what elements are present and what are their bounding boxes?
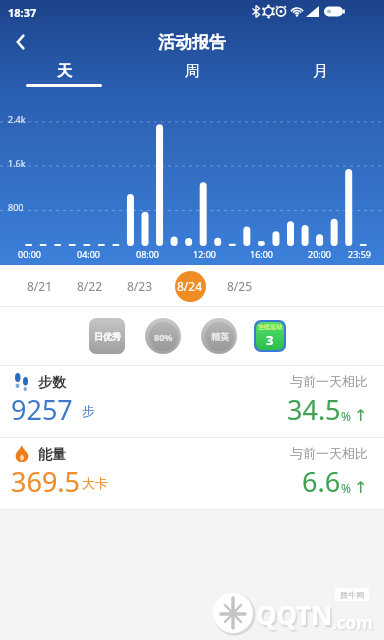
staticText: 8/25	[227, 278, 253, 294]
button[interactable]: 周	[128, 58, 256, 92]
staticText: 与前一天相比	[290, 445, 368, 461]
button[interactable]: 天	[0, 58, 128, 92]
staticText: 与前一天相比	[290, 373, 368, 389]
staticText: ↑	[354, 406, 368, 425]
staticText: 34.5	[287, 391, 341, 428]
staticText: 大卡	[82, 475, 108, 491]
staticText: 日优秀	[94, 331, 121, 342]
staticText: 腾牛网	[340, 590, 364, 600]
button[interactable]: 8/23	[120, 266, 160, 306]
staticText: 活动报告	[0, 32, 384, 53]
staticText: 9257	[11, 391, 73, 428]
staticText: 12:00	[193, 248, 217, 260]
staticText: 1.6k	[8, 157, 26, 169]
staticText: 6.6	[302, 463, 341, 500]
staticText: ↑	[354, 478, 368, 497]
staticText: 能量	[38, 446, 66, 464]
button[interactable]	[6, 27, 36, 57]
staticText: 8/23	[127, 278, 153, 294]
staticText: 8/21	[27, 278, 53, 294]
button[interactable]: 月	[256, 58, 384, 92]
button[interactable]: 8/21	[20, 266, 60, 306]
button[interactable]: 步数	[0, 366, 384, 437]
staticText: 00:00	[18, 248, 42, 260]
staticText: 369.5	[11, 463, 81, 500]
staticText: 步	[82, 403, 95, 419]
staticText: 80%	[154, 331, 173, 343]
staticText: 精英	[211, 331, 229, 342]
button[interactable]: 8/22	[70, 266, 110, 306]
staticText: 3	[266, 331, 274, 349]
staticText: QQTN	[256, 597, 333, 632]
staticText: 连续运动	[258, 323, 282, 331]
staticText: .com	[332, 611, 373, 634]
staticText: 04:00	[77, 248, 101, 260]
staticText: 天	[57, 62, 72, 81]
button[interactable]: 8/25	[220, 266, 260, 306]
staticText: 月	[313, 62, 328, 81]
staticText: 8/24	[177, 278, 203, 294]
staticText: 18:37	[8, 5, 37, 20]
button[interactable]: 能量	[0, 438, 384, 509]
staticText: 16:00	[250, 248, 274, 260]
staticText: %	[341, 480, 351, 496]
staticText: 步数	[38, 374, 66, 392]
staticText: 8/22	[77, 278, 103, 294]
staticText: 800	[8, 201, 24, 213]
button[interactable]: 8/24	[170, 266, 210, 306]
staticText: 周	[185, 62, 200, 81]
staticText: 2.4k	[8, 113, 26, 125]
staticText: 20:00	[308, 248, 332, 260]
staticText: 08:00	[136, 248, 160, 260]
staticText: 23:59	[348, 248, 372, 260]
staticText: %	[341, 408, 351, 424]
